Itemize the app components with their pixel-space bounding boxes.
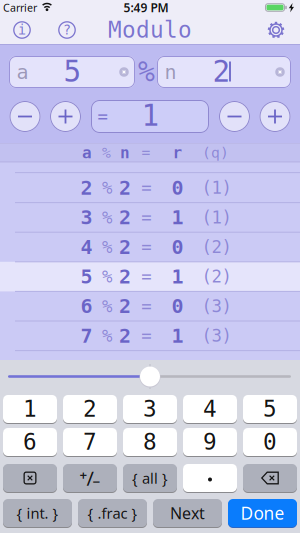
- button[interactable]: { .frac }: [78, 499, 147, 528]
- button[interactable]: { int. }: [3, 499, 72, 528]
- staticText: =: [141, 144, 150, 161]
- staticText: +: [79, 466, 87, 483]
- staticText: 0: [263, 429, 277, 455]
- button[interactable]: Settings: [265, 19, 287, 41]
- staticText: 1: [171, 324, 183, 347]
- staticText: =: [141, 237, 151, 257]
- staticText: %: [102, 178, 112, 198]
- staticText: %: [102, 267, 112, 286]
- staticText: (1): [201, 178, 231, 198]
- button[interactable]: Delete: [243, 464, 297, 493]
- staticText: %: [102, 237, 112, 257]
- staticText: 2: [119, 324, 131, 347]
- button[interactable]: Done: [228, 499, 297, 528]
- button[interactable]: Increment: [259, 101, 290, 132]
- staticText: 2: [119, 206, 131, 229]
- button[interactable]: a value: [9, 56, 135, 88]
- button[interactable]: n value: [157, 56, 291, 88]
- staticText: =: [97, 107, 107, 126]
- button[interactable]: 8: [123, 428, 177, 457]
- button[interactable]: Decrement: [219, 101, 250, 132]
- staticText: %: [102, 144, 111, 161]
- staticText: 1: [23, 396, 37, 422]
- button[interactable]: 6: [3, 428, 57, 457]
- button[interactable]: Info: [11, 19, 33, 41]
- button[interactable]: 0: [243, 428, 297, 457]
- staticText: 0: [171, 295, 183, 318]
- staticText: 9: [203, 429, 217, 455]
- staticText: (3): [201, 296, 231, 316]
- staticText: 8: [143, 429, 157, 455]
- staticText: { int. }: [16, 503, 58, 523]
- staticText: 2: [119, 236, 131, 258]
- staticText: 2: [212, 55, 230, 88]
- staticText: 2: [119, 265, 131, 288]
- staticText: 5: [263, 396, 277, 422]
- staticText: 1: [171, 265, 183, 288]
- staticText: 4: [203, 396, 217, 422]
- button[interactable]: 7: [63, 428, 117, 457]
- button[interactable]: Decimal point: [183, 464, 237, 493]
- button[interactable]: Next: [153, 499, 222, 528]
- button[interactable]: Decrement: [9, 101, 40, 132]
- staticText: 1: [141, 99, 159, 132]
- staticText: Done: [240, 501, 284, 524]
- staticText: Next: [170, 502, 205, 524]
- staticText: /: [86, 465, 93, 491]
- button[interactable]: 2: [63, 395, 117, 424]
- staticText: %: [102, 326, 112, 346]
- button[interactable]: Toggle sign: [63, 464, 117, 493]
- staticText: 3: [143, 396, 157, 422]
- staticText: −: [92, 473, 100, 490]
- staticText: (2): [201, 237, 231, 257]
- staticText: Modulo: [108, 17, 192, 43]
- button[interactable]: 3: [123, 395, 177, 424]
- staticText: 6: [23, 429, 37, 455]
- staticText: (2): [201, 267, 231, 286]
- button[interactable]: 5: [243, 395, 297, 424]
- staticText: 0: [171, 236, 183, 258]
- staticText: 4: [80, 236, 92, 258]
- button[interactable]: Help: [56, 19, 78, 41]
- staticText: 5: [63, 55, 81, 88]
- staticText: 2: [83, 396, 97, 422]
- button[interactable]: Slider: [139, 366, 160, 387]
- staticText: 3: [80, 206, 92, 229]
- button[interactable]: 4: [183, 395, 237, 424]
- staticText: %: [102, 296, 112, 316]
- staticText: 0: [171, 176, 183, 199]
- staticText: 1: [171, 206, 183, 229]
- staticText: 2: [80, 176, 92, 199]
- staticText: ?: [63, 22, 71, 37]
- staticText: Carrier: [3, 0, 37, 15]
- button[interactable]: { all }: [123, 464, 177, 493]
- staticText: =: [141, 326, 151, 346]
- button[interactable]: Clear: [3, 464, 57, 493]
- button[interactable]: 1: [3, 395, 57, 424]
- staticText: 7: [80, 324, 92, 347]
- staticText: %: [138, 56, 155, 87]
- staticText: 5:49 PM: [123, 0, 168, 15]
- staticText: 2: [119, 295, 131, 318]
- staticText: (1): [201, 208, 231, 227]
- button[interactable]: Increment: [50, 101, 81, 132]
- staticText: =: [141, 208, 151, 227]
- staticText: n: [164, 61, 176, 83]
- button[interactable]: Clear: [119, 67, 128, 76]
- staticText: 7: [83, 429, 97, 455]
- staticText: (q): [202, 144, 229, 161]
- staticText: a: [16, 61, 28, 83]
- staticText: { all }: [132, 468, 168, 488]
- button[interactable]: Clear: [275, 67, 284, 76]
- staticText: r: [172, 143, 182, 162]
- staticText: 5: [80, 265, 92, 288]
- button[interactable]: 9: [183, 428, 237, 457]
- staticText: a: [82, 143, 92, 162]
- staticText: n: [120, 143, 130, 162]
- staticText: (3): [201, 326, 231, 346]
- staticText: 6: [80, 295, 92, 318]
- staticText: =: [141, 296, 151, 316]
- staticText: =: [141, 267, 151, 286]
- staticText: =: [141, 178, 151, 198]
- staticText: { .frac }: [87, 503, 137, 523]
